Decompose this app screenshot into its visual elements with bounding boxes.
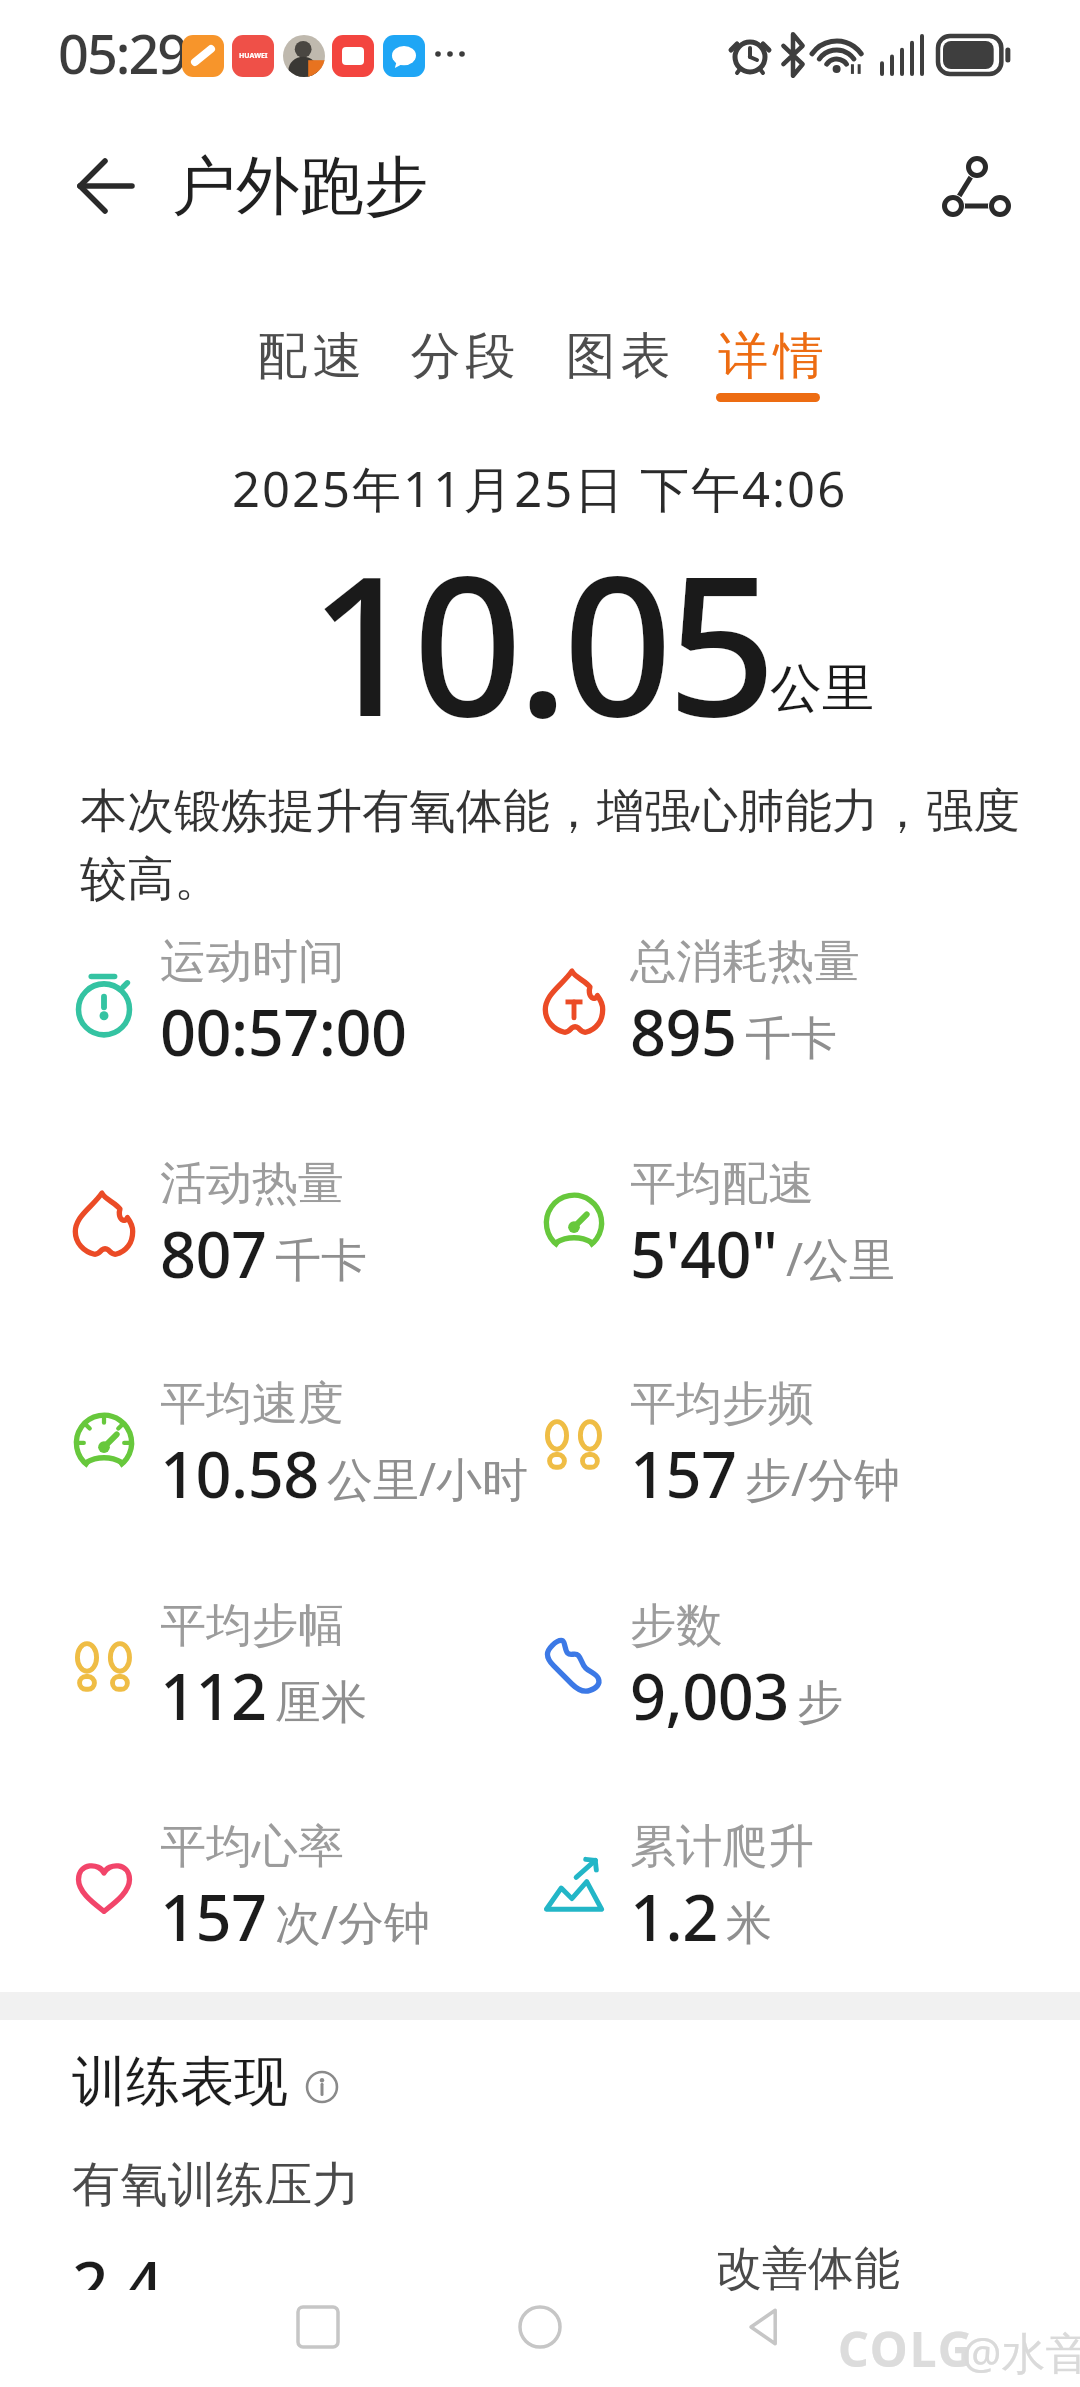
button[interactable] [518, 2305, 562, 2349]
staticText: 步/分钟 [745, 1447, 901, 1510]
staticText: 平均速度 [160, 1375, 344, 1433]
button[interactable]: 详情 [716, 325, 846, 411]
button[interactable] [930, 145, 1020, 235]
staticText: 改善体能 [716, 2240, 900, 2298]
staticText: 公里/小时 [327, 1447, 529, 1510]
staticText: COLG [838, 2316, 975, 2381]
staticText: 总消耗热量 [630, 933, 860, 991]
staticText: 1.2 [630, 1874, 718, 1960]
staticText: 分段 [408, 325, 518, 388]
staticText: 千卡 [275, 1232, 367, 1290]
staticText: 05:29 [58, 16, 187, 90]
staticText: 2.4 [72, 2240, 163, 2290]
staticText: 运动时间 [160, 933, 344, 991]
button[interactable]: 分段 [408, 325, 538, 411]
staticText: 平均步频 [630, 1375, 814, 1433]
button[interactable]: 图表 [563, 325, 693, 411]
staticText: 本次锻炼提升有氧体能，增强心肺能力，强度 [80, 782, 1020, 841]
staticText: @水音 [962, 2322, 1080, 2382]
staticText: 平均配速 [630, 1155, 814, 1213]
button[interactable] [296, 2305, 340, 2349]
staticText: 次/分钟 [275, 1890, 431, 1953]
button[interactable] [305, 2070, 339, 2104]
staticText: 平均心率 [160, 1818, 344, 1876]
button[interactable] [60, 146, 150, 226]
staticText: 157 [630, 1431, 737, 1517]
staticText: 157 [160, 1874, 267, 1960]
staticText: /公里 [786, 1227, 896, 1290]
staticText: 9,003 [630, 1653, 789, 1739]
staticText: 2025年11月25日 下午4:06 [232, 455, 848, 522]
staticText: 10.58 [160, 1431, 319, 1517]
button[interactable] [740, 2305, 784, 2349]
staticText: 10.05 [309, 511, 771, 773]
staticText: 配速 [255, 325, 365, 388]
staticText: 895 [630, 989, 737, 1075]
staticText: 厘米 [275, 1674, 367, 1732]
button[interactable]: 配速 [255, 325, 385, 411]
staticText: 公里 [770, 656, 874, 722]
staticText: 较高。 [80, 850, 221, 909]
staticText: 活动热量 [160, 1155, 344, 1213]
staticText: 有氧训练压力 [72, 2155, 360, 2215]
staticText: 千卡 [745, 1010, 837, 1068]
staticText: 步数 [630, 1597, 722, 1655]
staticText: 112 [160, 1653, 267, 1739]
staticText: 累计爬升 [630, 1818, 814, 1876]
staticText: 详情 [716, 325, 826, 388]
staticText: 平均步幅 [160, 1597, 344, 1655]
staticText: HUAWEI [239, 51, 268, 61]
staticText: 步 [797, 1674, 843, 1732]
staticText: 807 [160, 1211, 267, 1297]
staticText: 5'40" [630, 1211, 778, 1297]
staticText: 00:57:00 [160, 989, 407, 1075]
staticText: 米 [726, 1895, 772, 1953]
staticText: 图表 [563, 325, 673, 388]
staticText: 户外跑步 [172, 146, 428, 227]
staticText: 训练表现 [72, 2048, 288, 2116]
